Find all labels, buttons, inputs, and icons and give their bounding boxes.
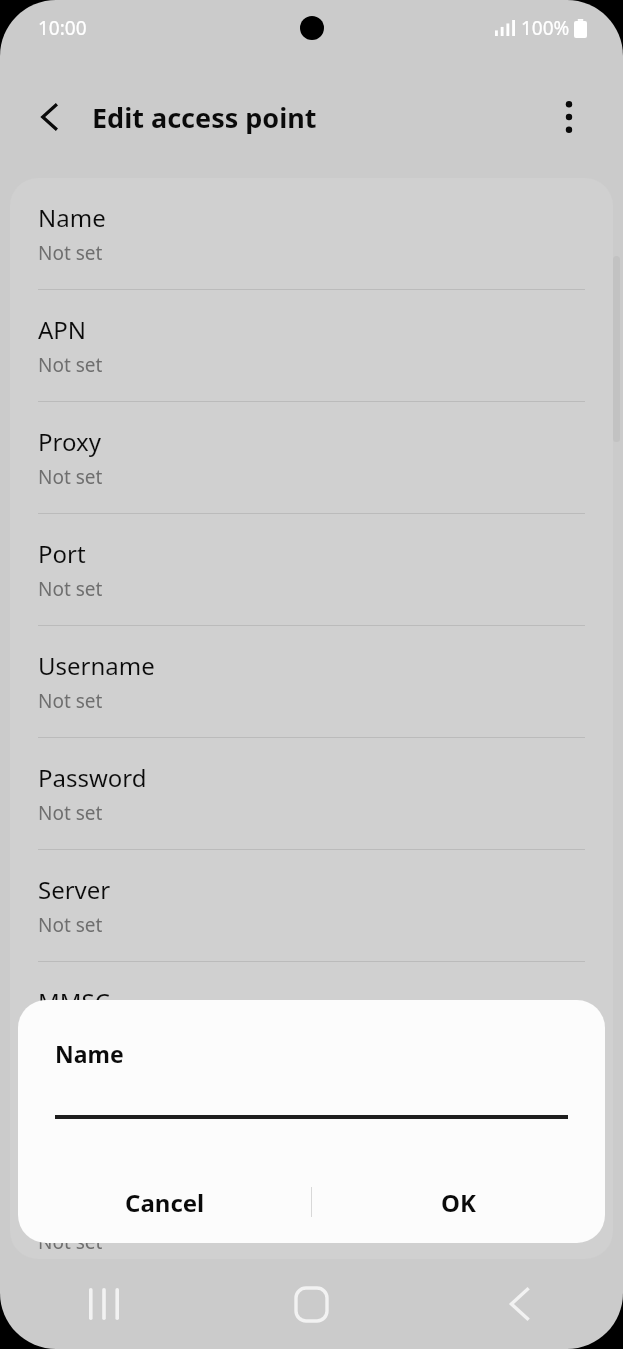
staticText: Not set bbox=[38, 1024, 103, 1050]
button[interactable]: Back bbox=[22, 89, 78, 145]
button[interactable]: Proxy bbox=[10, 401, 613, 513]
button[interactable]: Password bbox=[10, 737, 613, 849]
staticText: Not set bbox=[38, 688, 103, 714]
staticText: Password bbox=[38, 761, 147, 794]
staticText: Port bbox=[38, 537, 86, 570]
staticText: APN bbox=[38, 313, 87, 346]
staticText: MMSC bbox=[38, 985, 110, 1018]
staticText: Not set bbox=[38, 912, 103, 938]
button[interactable]: Recents bbox=[0, 1259, 207, 1349]
button[interactable]: Cancel bbox=[18, 1161, 311, 1243]
staticText: Server bbox=[38, 873, 111, 906]
button[interactable]: Username bbox=[10, 625, 613, 737]
staticText: Name bbox=[38, 201, 106, 234]
button[interactable]: MMS proxy bbox=[10, 1073, 613, 1185]
button[interactable]: APN bbox=[10, 289, 613, 401]
button[interactable]: Port bbox=[10, 513, 613, 625]
button[interactable]: MMSC bbox=[10, 961, 613, 1073]
staticText: MMS proxy bbox=[38, 1097, 165, 1130]
staticText: 10:00 bbox=[38, 15, 87, 41]
staticText: Not set bbox=[38, 464, 103, 490]
staticText: Not set bbox=[38, 576, 103, 602]
button[interactable]: Server bbox=[10, 849, 613, 961]
staticText: Proxy bbox=[38, 425, 101, 458]
staticText: Not set bbox=[38, 352, 103, 378]
staticText: Not set bbox=[38, 800, 103, 826]
button[interactable]: Home bbox=[207, 1259, 415, 1349]
staticText: Cancel bbox=[125, 1186, 205, 1219]
staticText: Username bbox=[38, 649, 155, 682]
button[interactable]: Name bbox=[10, 178, 613, 289]
staticText: Name bbox=[55, 1038, 124, 1069]
staticText: Edit access point bbox=[92, 99, 317, 136]
button[interactable]: OK bbox=[312, 1161, 605, 1243]
button[interactable]: More options bbox=[541, 89, 597, 145]
staticText: Not set bbox=[38, 240, 103, 266]
staticText: 100% bbox=[521, 15, 570, 41]
staticText: Not set bbox=[38, 1229, 103, 1255]
staticText: OK bbox=[441, 1186, 476, 1219]
button[interactable]: Back bbox=[415, 1259, 623, 1349]
staticText: MMS port bbox=[38, 1190, 149, 1223]
button[interactable]: MMS port bbox=[10, 1185, 613, 1259]
